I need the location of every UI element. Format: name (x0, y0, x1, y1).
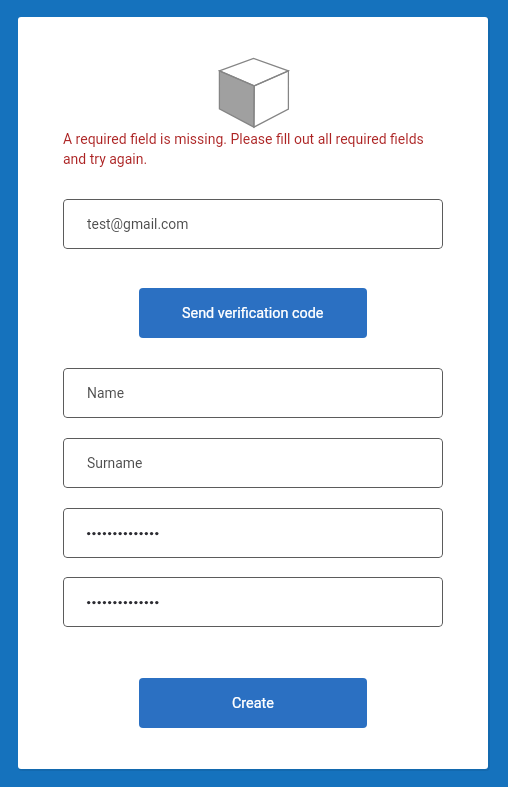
button[interactable]: Send verification code (139, 288, 367, 338)
other: Logo (218, 57, 291, 129)
button[interactable]: Name (63, 368, 443, 418)
button[interactable]: Create (139, 678, 367, 728)
staticText: Create (232, 695, 274, 712)
staticText: Send verification code (182, 305, 324, 322)
button[interactable]: Email (63, 199, 443, 249)
button[interactable]: Surname (63, 438, 443, 488)
staticText: Name (87, 385, 125, 401)
button[interactable]: Password (63, 508, 443, 558)
staticText: Surname (87, 455, 143, 471)
staticText: A required field is missing. Please fill… (63, 131, 424, 167)
staticText: test@gmail.com (87, 216, 189, 232)
button[interactable]: Confirm password (63, 577, 443, 627)
